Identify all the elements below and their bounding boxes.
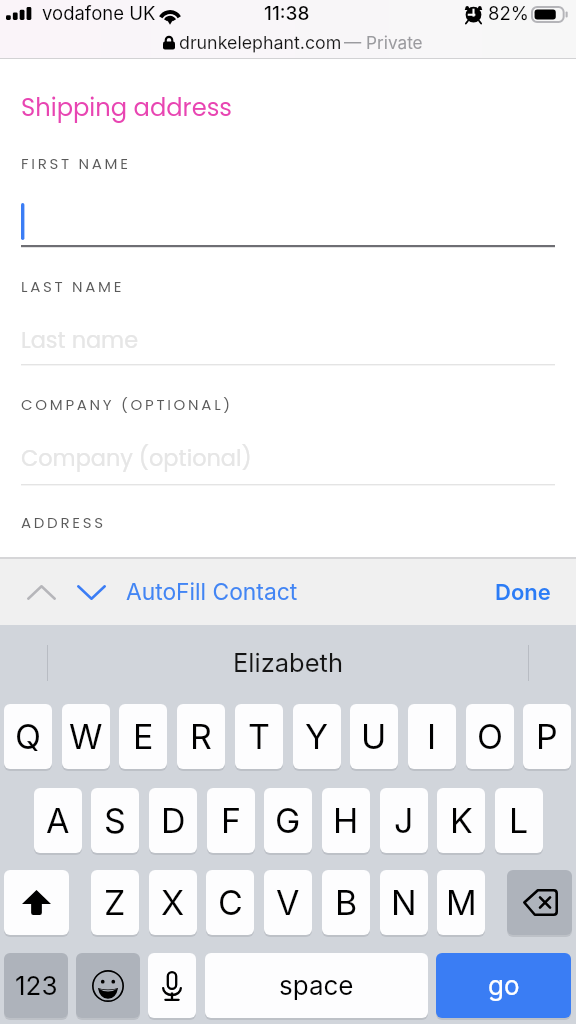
button[interactable]: Shift <box>4 870 69 937</box>
button[interactable]: X <box>149 870 197 937</box>
button[interactable]: L <box>495 788 543 855</box>
button[interactable]: C <box>206 870 254 937</box>
button[interactable]: E <box>119 704 167 771</box>
staticText: O <box>477 716 503 757</box>
staticText: Elizabeth <box>233 647 343 678</box>
staticText: H <box>333 800 359 841</box>
staticText: J <box>394 800 414 841</box>
staticText: C <box>218 882 243 923</box>
button[interactable]: A <box>34 788 82 855</box>
button[interactable]: Emoji <box>76 953 140 1020</box>
staticText: V <box>276 882 300 923</box>
button[interactable]: Dictation <box>148 953 196 1020</box>
staticText: N <box>391 882 417 923</box>
staticText: T <box>248 716 270 757</box>
button[interactable]: Q <box>4 704 52 771</box>
button[interactable]: M <box>437 870 485 937</box>
button[interactable]: Next field <box>64 559 119 625</box>
staticText: E <box>133 716 154 757</box>
button[interactable]: FIRST NAME <box>0 147 576 253</box>
staticText: P <box>536 716 558 757</box>
staticText: Last name <box>21 324 139 355</box>
staticText: R <box>190 716 212 757</box>
staticText: space <box>279 970 354 1001</box>
button[interactable]: D <box>149 788 197 855</box>
button[interactable]: Z <box>91 870 139 937</box>
staticText: go <box>488 970 520 1001</box>
staticText: X <box>161 882 185 923</box>
staticText: drunkelephant.com <box>179 32 342 54</box>
staticText: M <box>446 882 477 923</box>
button[interactable]: go <box>436 953 571 1020</box>
staticText: ADDRESS <box>21 512 106 533</box>
button[interactable]: O <box>466 704 514 771</box>
button[interactable]: T <box>235 704 283 771</box>
staticText: I <box>427 716 437 757</box>
staticText: W <box>69 716 103 757</box>
button[interactable]: COMPANY (OPTIONAL) <box>0 388 576 492</box>
staticText: S <box>104 800 126 841</box>
staticText: A <box>46 800 70 841</box>
staticText: LAST NAME <box>21 276 125 297</box>
staticText: Done <box>495 579 551 606</box>
button[interactable]: B <box>322 870 370 937</box>
staticText: Shipping address <box>21 91 232 125</box>
button[interactable]: K <box>437 788 485 855</box>
button[interactable]: S <box>91 788 139 855</box>
staticText: B <box>335 882 358 923</box>
staticText: 11:38 <box>264 2 310 25</box>
staticText: D <box>161 800 186 841</box>
staticText: 82% <box>488 2 529 24</box>
button[interactable]: N <box>380 870 428 937</box>
button[interactable]: F <box>207 788 255 855</box>
button[interactable]: U <box>350 704 398 771</box>
staticText: 123 <box>15 970 58 1001</box>
staticText: — Private <box>344 32 423 53</box>
staticText: G <box>275 800 301 841</box>
staticText: FIRST NAME <box>21 153 131 174</box>
button[interactable]: AutoFill Contact <box>119 559 305 625</box>
staticText: AutoFill Contact <box>126 578 298 606</box>
button[interactable]: V <box>264 870 312 937</box>
button[interactable]: P <box>523 704 571 771</box>
button[interactable]: W <box>62 704 110 771</box>
button[interactable]: drunkelephant.com <box>0 27 576 58</box>
staticText: vodafone UK <box>42 2 156 24</box>
button[interactable]: space <box>205 953 428 1020</box>
button[interactable]: LAST NAME <box>0 270 576 372</box>
button[interactable]: H <box>322 788 370 855</box>
staticText: Company (optional) <box>21 442 252 473</box>
button[interactable]: Done <box>479 559 576 625</box>
button[interactable]: Previous field <box>14 559 69 625</box>
staticText: Q <box>15 716 41 757</box>
button[interactable]: G <box>264 788 312 855</box>
button[interactable]: Elizabeth <box>48 625 528 699</box>
staticText: L <box>509 800 529 841</box>
button[interactable]: 123 <box>4 953 68 1020</box>
staticText: Y <box>305 716 329 757</box>
staticText: F <box>221 800 242 841</box>
staticText: K <box>450 800 473 841</box>
button[interactable]: J <box>380 788 428 855</box>
button[interactable]: Backspace <box>507 870 572 937</box>
staticText: U <box>361 716 387 757</box>
staticText: Z <box>104 882 126 923</box>
staticText: COMPANY (OPTIONAL) <box>21 394 233 415</box>
button[interactable]: Y <box>293 704 341 771</box>
button[interactable]: I <box>408 704 456 771</box>
button[interactable]: R <box>177 704 225 771</box>
